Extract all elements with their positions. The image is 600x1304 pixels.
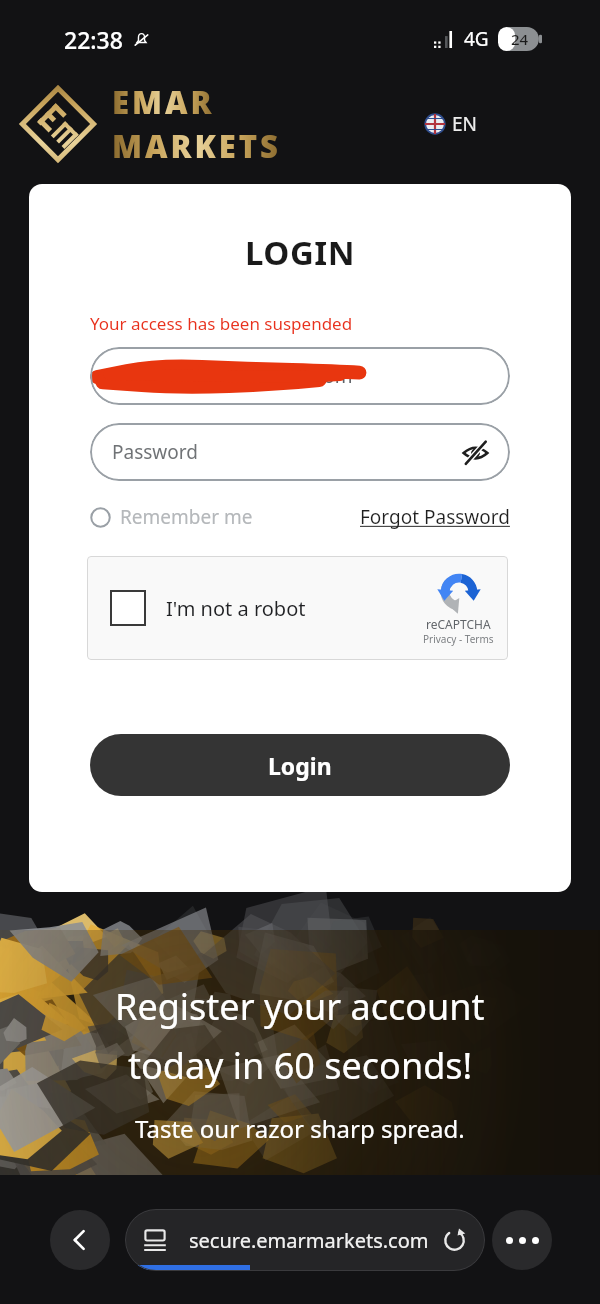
button[interactable]: Remember me bbox=[90, 501, 253, 533]
button[interactable]: Reload bbox=[437, 1223, 471, 1257]
button[interactable]: Show password bbox=[458, 435, 492, 469]
button[interactable]: Forgot Password bbox=[360, 501, 510, 533]
staticText: 4G bbox=[464, 26, 489, 52]
staticText: EN bbox=[452, 111, 478, 137]
button[interactable]: Password bbox=[90, 423, 510, 481]
button[interactable]: @gmail.com bbox=[90, 347, 510, 405]
staticText: Forgot Password bbox=[360, 504, 510, 530]
staticText: Taste our razor sharp spread. bbox=[135, 1112, 465, 1145]
staticText: reCAPTCHA bbox=[426, 616, 491, 632]
staticText: Your access has been suspended bbox=[90, 312, 353, 335]
staticText: secure.emarmarkets.com bbox=[189, 1227, 429, 1254]
staticText: EMAR bbox=[112, 81, 215, 123]
staticText: 22:38 bbox=[64, 24, 123, 55]
staticText: Privacy - Terms bbox=[423, 632, 494, 646]
staticText: Login bbox=[268, 750, 332, 781]
button[interactable]: Login bbox=[90, 734, 510, 796]
staticText: 24 bbox=[511, 29, 529, 49]
staticText: Remember me bbox=[120, 504, 253, 530]
button[interactable]: I'm not a robot bbox=[87, 556, 508, 660]
button[interactable]: EN bbox=[421, 107, 482, 141]
staticText: Register your account bbox=[115, 982, 485, 1031]
staticText: today in 60 seconds! bbox=[128, 1041, 473, 1090]
button[interactable]: secure.emarmarkets.com bbox=[125, 1209, 485, 1271]
staticText: @gmail.com bbox=[242, 363, 353, 389]
staticText: MARKETS bbox=[112, 125, 281, 167]
staticText: Password bbox=[112, 439, 198, 465]
staticText: LOGIN bbox=[29, 230, 571, 275]
staticText: I'm not a robot bbox=[166, 595, 306, 622]
button[interactable]: More options bbox=[492, 1210, 552, 1270]
button[interactable]: Back bbox=[50, 1210, 110, 1270]
